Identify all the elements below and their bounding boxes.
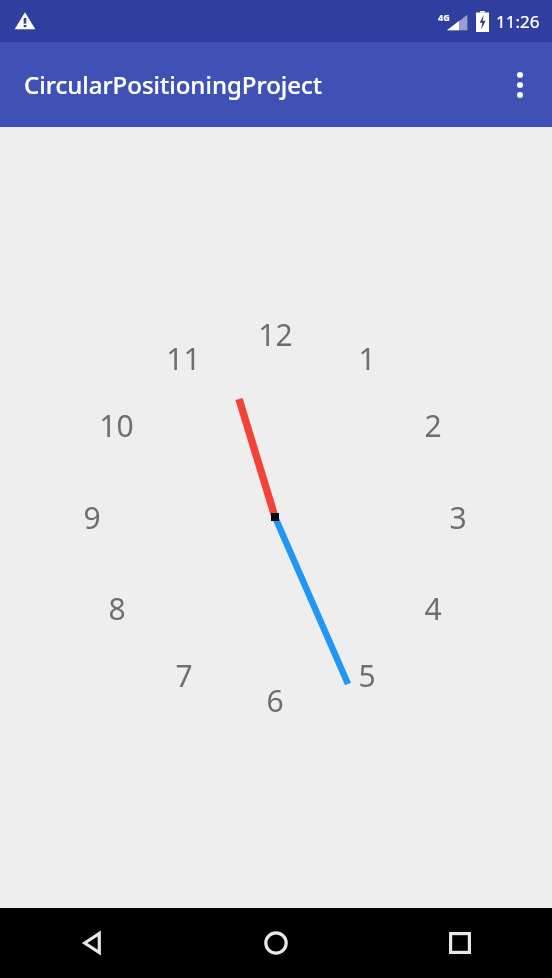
staticText: 8: [108, 588, 126, 629]
staticText: CircularPositioningProject: [24, 68, 323, 101]
staticText: 10: [99, 405, 134, 446]
staticText: 7: [175, 655, 193, 696]
staticText: 4G: [438, 11, 450, 23]
staticText: 5: [358, 655, 376, 696]
button[interactable]: Home: [184, 908, 368, 978]
staticText: 3: [449, 497, 467, 538]
staticText: 12: [258, 314, 293, 355]
button[interactable]: More options: [496, 61, 544, 109]
button[interactable]: Recent apps: [368, 908, 552, 978]
staticText: 2: [424, 405, 442, 446]
staticText: 11:26: [496, 10, 540, 33]
button[interactable]: Back: [0, 908, 184, 978]
staticText: 9: [83, 497, 101, 538]
other: Warning: [14, 10, 36, 32]
staticText: 6: [266, 680, 284, 721]
staticText: 4: [424, 588, 442, 629]
staticText: 11: [166, 338, 201, 379]
staticText: 1: [358, 338, 376, 379]
